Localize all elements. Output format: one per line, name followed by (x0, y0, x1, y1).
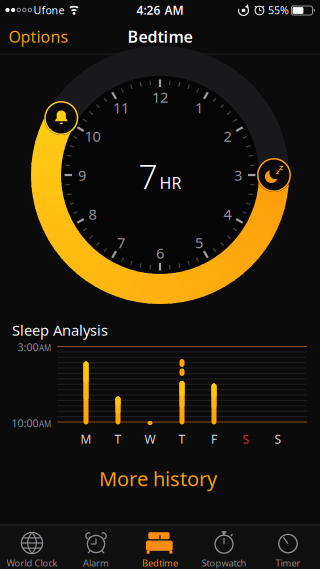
staticText: Ufone (33, 3, 64, 17)
button[interactable]: Timer (256, 525, 320, 569)
staticText: AM (164, 2, 183, 18)
button[interactable]: Stopwatch (192, 525, 256, 569)
staticText: 4 (223, 204, 231, 224)
staticText: AM (39, 419, 51, 429)
button[interactable]: World Clock (0, 525, 64, 569)
staticText: 10 (84, 126, 100, 146)
staticText: Options (8, 26, 68, 47)
staticText: AM (39, 343, 51, 353)
staticText: Stopwatch (201, 557, 246, 569)
staticText: 2 (223, 126, 231, 146)
staticText: T (178, 431, 185, 447)
button[interactable]: More history (99, 465, 217, 492)
button[interactable]: Wake time (42, 99, 80, 137)
staticText: 3 (234, 165, 242, 185)
staticText: S (274, 431, 281, 447)
staticText: World Clock (6, 557, 57, 569)
staticText: W (144, 431, 155, 447)
staticText: 55% (268, 3, 289, 17)
staticText: S (242, 431, 249, 447)
staticText: 5 (195, 233, 203, 252)
staticText: 1 (195, 98, 203, 117)
staticText: 8 (88, 204, 96, 224)
staticText: 4:26 (136, 2, 160, 18)
staticText: 11 (113, 98, 129, 117)
staticText: HR (159, 172, 181, 193)
staticText: 7 (138, 154, 157, 198)
staticText: 10:00 (11, 416, 38, 430)
staticText: 12 (152, 87, 168, 107)
staticText: M (80, 431, 91, 447)
staticText: T (114, 431, 121, 447)
staticText: Alarm (83, 557, 109, 569)
staticText: Timer (275, 557, 300, 569)
button[interactable]: Bedtime (255, 156, 293, 194)
staticText: Sleep Analysis (12, 320, 108, 340)
staticText: 7 (117, 233, 125, 252)
staticText: Bedtime (127, 26, 192, 47)
staticText: 3:00 (17, 340, 38, 354)
button[interactable]: Alarm (64, 525, 128, 569)
staticText: Bedtime (142, 557, 178, 569)
button[interactable]: Bedtime (128, 525, 192, 569)
button[interactable]: Options (8, 26, 68, 47)
staticText: More history (99, 465, 217, 492)
staticText: 9 (78, 165, 86, 185)
staticText: 6 (156, 243, 164, 263)
staticText: F (211, 431, 217, 447)
